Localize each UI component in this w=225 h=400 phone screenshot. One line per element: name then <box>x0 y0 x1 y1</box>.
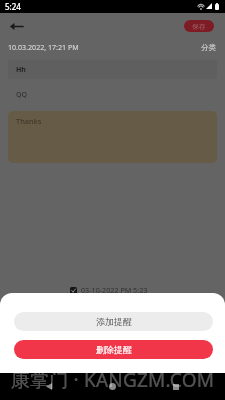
staticText: 保存 <box>192 22 206 31</box>
button[interactable]: 添加提醒 <box>14 312 213 331</box>
staticText: QQ <box>16 90 27 100</box>
staticText: 康掌门 · KANGZM.COM <box>0 367 225 393</box>
button[interactable]: Back <box>39 377 58 396</box>
button[interactable]: 分类 <box>200 43 217 52</box>
button[interactable]: 保存 <box>184 20 214 32</box>
staticText: 添加提醒 <box>96 316 132 327</box>
staticText: 分类 <box>201 43 216 52</box>
staticText: Hh <box>16 65 26 75</box>
staticText: 5:24 <box>5 1 21 12</box>
button[interactable]: Back <box>5 15 27 37</box>
staticText: 删除提醒 <box>96 344 132 355</box>
button[interactable]: Hh <box>8 60 217 79</box>
button[interactable]: 删除提醒 <box>14 340 213 359</box>
staticText: 10.03.2022, 17:21 PM <box>8 42 79 52</box>
staticText: 03-10-2022 PM 5:23 <box>81 285 148 295</box>
staticText: Thanks <box>16 116 42 126</box>
button[interactable]: Recents <box>166 377 185 396</box>
button[interactable]: Home <box>103 377 122 396</box>
